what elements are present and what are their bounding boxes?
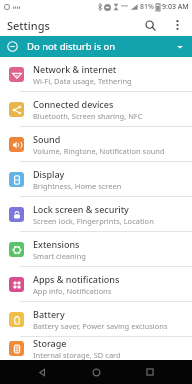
staticText: Apps & notifications bbox=[33, 273, 120, 285]
staticText: Connected devices bbox=[33, 98, 114, 110]
button[interactable]: Expand bbox=[172, 39, 188, 55]
staticText: Volume, Ringtone, Notification sound bbox=[33, 146, 165, 156]
staticText: 81% bbox=[140, 2, 154, 12]
button[interactable]: Battery bbox=[0, 302, 192, 336]
staticText: Lock screen & security bbox=[33, 203, 129, 215]
button[interactable]: Extensions bbox=[0, 232, 192, 266]
staticText: 9:03 AM bbox=[162, 2, 189, 12]
button[interactable]: Storage bbox=[0, 337, 192, 360]
staticText: Bluetooth, Screen sharing, NFC bbox=[33, 111, 143, 121]
staticText: Battery saver, Power saving exclusions bbox=[33, 321, 168, 331]
staticText: Screen lock, Fingerprints, Location bbox=[33, 216, 154, 226]
button[interactable]: Network & internet bbox=[0, 57, 192, 91]
button[interactable]: Connected devices bbox=[0, 92, 192, 126]
button[interactable]: Apps & notifications bbox=[0, 267, 192, 301]
button[interactable]: More options bbox=[168, 16, 186, 34]
staticText: Network & internet bbox=[33, 63, 117, 75]
button[interactable]: Lock screen & security bbox=[0, 197, 192, 231]
staticText: Smart cleaning bbox=[33, 251, 86, 261]
button[interactable]: Back bbox=[30, 360, 54, 384]
staticText: Wi-Fi, Data usage, Tethering bbox=[33, 76, 132, 86]
staticText: Brightness, Home screen bbox=[33, 181, 122, 191]
staticText: Settings bbox=[7, 18, 50, 33]
staticText: App info, Notifications bbox=[33, 286, 112, 296]
staticText: Extensions bbox=[33, 238, 80, 250]
button[interactable]: Search bbox=[141, 16, 159, 34]
staticText: Sound bbox=[33, 133, 61, 145]
staticText: Storage bbox=[33, 337, 67, 349]
button[interactable]: Do not disturb is on bbox=[0, 36, 192, 57]
button[interactable]: Recent apps bbox=[138, 360, 162, 384]
staticText: Display bbox=[33, 168, 65, 180]
button[interactable]: Display bbox=[0, 162, 192, 196]
button[interactable]: Sound bbox=[0, 127, 192, 161]
staticText: Do not disturb is on bbox=[27, 40, 172, 53]
staticText: Battery bbox=[33, 308, 65, 320]
staticText: Internal storage, SD card bbox=[33, 350, 121, 360]
button[interactable]: Home bbox=[84, 360, 108, 384]
